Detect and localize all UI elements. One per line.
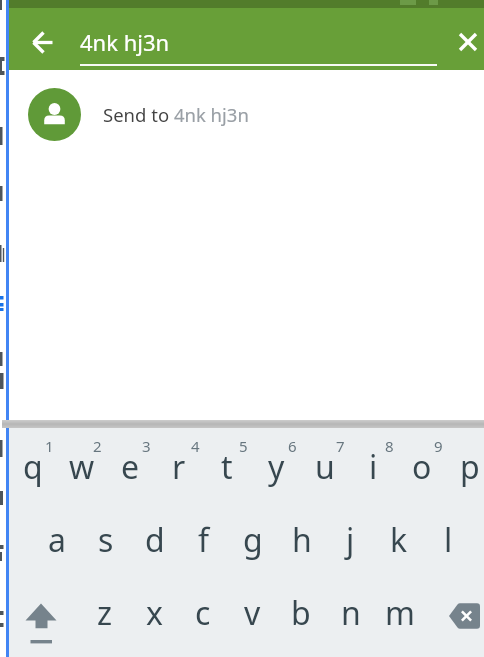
staticText: 6 — [288, 436, 297, 456]
staticText: m — [385, 591, 415, 635]
staticText: u — [315, 445, 335, 489]
button[interactable]: v — [228, 576, 276, 650]
button[interactable]: a — [33, 503, 81, 577]
staticText: t — [221, 445, 233, 489]
staticText: v — [244, 591, 261, 635]
staticText: d — [145, 518, 165, 562]
button[interactable]: j — [326, 503, 374, 577]
button[interactable] — [17, 589, 67, 647]
staticText: y — [268, 445, 285, 489]
button[interactable]: q — [9, 430, 57, 504]
button[interactable]: z — [81, 576, 129, 650]
button[interactable]: b — [277, 576, 325, 650]
staticText: j — [346, 518, 355, 562]
button[interactable]: h — [278, 503, 326, 577]
staticText: r — [172, 445, 186, 489]
staticText: k — [390, 518, 408, 562]
button[interactable] — [23, 21, 59, 57]
button[interactable] — [440, 595, 484, 637]
button[interactable]: m — [376, 576, 424, 650]
button[interactable]: o — [398, 430, 446, 504]
button[interactable]: u — [301, 430, 349, 504]
button[interactable]: y — [252, 430, 300, 504]
staticText: s — [98, 518, 114, 562]
button[interactable]: s — [82, 503, 130, 577]
staticText: i — [369, 445, 378, 489]
staticText: w — [69, 445, 95, 489]
staticText: x — [146, 591, 163, 635]
button[interactable]: d — [131, 503, 179, 577]
button[interactable]: n — [327, 576, 375, 650]
staticText: e — [121, 445, 140, 489]
staticText: z — [97, 591, 113, 635]
button[interactable]: p — [446, 430, 484, 504]
staticText: o — [412, 445, 432, 489]
button[interactable]: f — [180, 503, 228, 577]
button[interactable]: t — [203, 430, 251, 504]
staticText: n — [341, 591, 361, 635]
staticText: Send to 4nk hj3n — [103, 102, 249, 127]
button[interactable]: l — [424, 503, 472, 577]
staticText: 3 — [142, 436, 151, 456]
button[interactable]: w — [58, 430, 106, 504]
staticText: l — [444, 518, 453, 562]
staticText: 4 — [191, 436, 200, 456]
staticText: c — [195, 591, 211, 635]
staticText: a — [48, 518, 66, 562]
button[interactable]: r — [155, 430, 203, 504]
button[interactable]: Send to 4nk hj3n — [28, 88, 484, 141]
staticText: 9 — [434, 436, 443, 456]
staticText: g — [243, 518, 263, 562]
staticText: h — [292, 518, 312, 562]
staticText: 4nk hj3n — [80, 27, 170, 57]
button[interactable]: c — [179, 576, 227, 650]
staticText: f — [198, 518, 210, 562]
staticText: 7 — [336, 436, 345, 456]
staticText: 2 — [93, 436, 102, 456]
staticText: 5 — [239, 436, 248, 456]
staticText: b — [291, 591, 311, 635]
button[interactable]: k — [375, 503, 423, 577]
button[interactable]: i — [349, 430, 397, 504]
button[interactable]: x — [130, 576, 178, 650]
staticText: 8 — [385, 436, 394, 456]
staticText: q — [23, 445, 43, 489]
staticText: 1 — [45, 436, 54, 456]
button[interactable]: e — [106, 430, 154, 504]
staticText: p — [460, 445, 480, 489]
button[interactable]: g — [229, 503, 277, 577]
button[interactable] — [450, 24, 484, 60]
